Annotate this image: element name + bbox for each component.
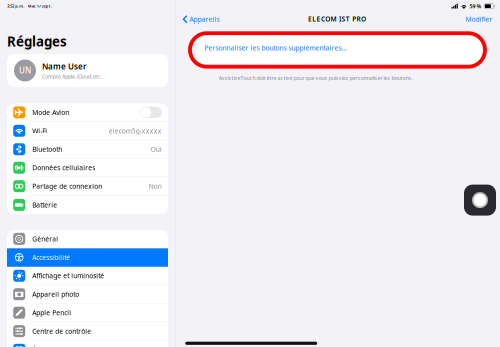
staticText: Modifier: [465, 15, 492, 24]
button[interactable]: Batterie: [7, 196, 168, 214]
button[interactable]: Apple Pencil: [7, 304, 168, 322]
button[interactable]: Affichage et luminosité: [7, 267, 168, 285]
staticText: Wi-Fi: [32, 126, 47, 135]
staticText: 2:52 p.m.: [7, 3, 24, 9]
button[interactable]: Appareil photo: [7, 285, 168, 304]
staticText: Accessibilité: [32, 253, 70, 262]
staticText: Données cellulaires: [32, 163, 95, 172]
button[interactable]: Modifier: [461, 12, 496, 27]
staticText: UN: [19, 65, 31, 76]
staticText: 59 %: [469, 3, 481, 10]
button[interactable]: Mode Avion: [7, 103, 168, 122]
button[interactable]: Personnaliser les boutons supplémentaire…: [196, 36, 481, 64]
button[interactable]: Écran d'accueil: [7, 341, 168, 347]
staticText: Réglages: [7, 32, 67, 50]
staticText: Appareils: [189, 15, 219, 24]
staticText: Bluetooth: [32, 145, 62, 154]
button[interactable]: AssistiveTouch: [464, 185, 496, 216]
staticText: Non: [149, 182, 162, 191]
button[interactable]: Wi-Fi: [7, 122, 168, 140]
staticText: Apple Pencil: [32, 308, 71, 317]
staticText: Général: [32, 234, 58, 243]
staticText: Affichage et luminosité: [32, 271, 104, 280]
staticText: Appareil photo: [32, 290, 79, 299]
staticText: Personnaliser les boutons supplémentaire…: [204, 44, 346, 52]
staticText: Oui: [151, 145, 162, 154]
button[interactable]: UN: [7, 54, 168, 87]
staticText: Name User: [42, 61, 86, 72]
staticText: AssistiveTouch doit être activé pour que…: [218, 74, 412, 81]
button[interactable]: Général: [7, 230, 168, 248]
button[interactable]: Centre de contrôle: [7, 322, 168, 340]
staticText: Mode Avion: [32, 108, 69, 117]
staticText: Partage de connexion: [32, 182, 102, 191]
button[interactable]: Appareils: [176, 12, 223, 27]
staticText: Centre de contrôle: [32, 327, 91, 336]
staticText: elecom5g-xxxxx: [109, 126, 162, 135]
staticText: Compte Apple, iCloud, etc.: [42, 73, 102, 80]
staticText: Batterie: [32, 200, 57, 209]
button[interactable]: Bluetooth: [7, 140, 168, 159]
button[interactable]: Accessibilité: [7, 248, 168, 267]
button[interactable]: Partage de connexion: [7, 177, 168, 196]
staticText: Écran d'accueil: [32, 345, 79, 347]
staticText: Mar. 17 sept.: [28, 3, 52, 9]
staticText: ELECOM IST PRO: [308, 15, 366, 23]
button[interactable]: Données cellulaires: [7, 159, 168, 177]
